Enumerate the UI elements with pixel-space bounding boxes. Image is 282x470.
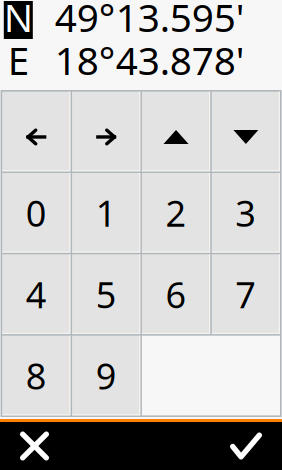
- button[interactable]: Move up: [142, 92, 210, 171]
- button[interactable]: Move left: [2, 92, 70, 171]
- staticText: 6: [165, 270, 186, 318]
- button[interactable]: 8: [2, 336, 70, 415]
- staticText: 4: [26, 270, 47, 318]
- staticText: E: [8, 34, 29, 86]
- staticText: 7: [235, 270, 256, 318]
- staticText: 3: [235, 189, 256, 237]
- button[interactable]: 0: [2, 173, 70, 253]
- button[interactable]: 1: [72, 173, 140, 253]
- button[interactable]: 49°13.595': [33, 0, 245, 40]
- button[interactable]: Longitude hemisphere: [4, 41, 33, 79]
- button[interactable]: 18°43.878': [33, 40, 245, 80]
- staticText: 5: [96, 270, 117, 318]
- button[interactable]: 9: [72, 336, 140, 415]
- staticText: 0: [26, 189, 47, 237]
- staticText: 49°13.595': [55, 0, 245, 43]
- staticText: 2: [165, 189, 186, 237]
- button[interactable]: 3: [212, 173, 280, 253]
- staticText: 8: [26, 352, 47, 399]
- staticText: 18°43.878': [55, 34, 245, 86]
- button[interactable]: 2: [142, 173, 210, 253]
- staticText: 9: [96, 352, 117, 399]
- button[interactable]: 6: [142, 254, 210, 334]
- button[interactable]: Move down: [212, 92, 280, 171]
- button[interactable]: Latitude hemisphere: [4, 1, 33, 39]
- button[interactable]: Cancel: [0, 422, 141, 470]
- button[interactable]: 4: [2, 254, 70, 334]
- staticText: 1: [96, 189, 117, 237]
- button[interactable]: 7: [212, 254, 280, 334]
- button[interactable]: 5: [72, 254, 140, 334]
- staticText: N: [4, 0, 33, 43]
- button[interactable]: Confirm: [141, 422, 282, 470]
- button[interactable]: Move right: [72, 92, 140, 171]
